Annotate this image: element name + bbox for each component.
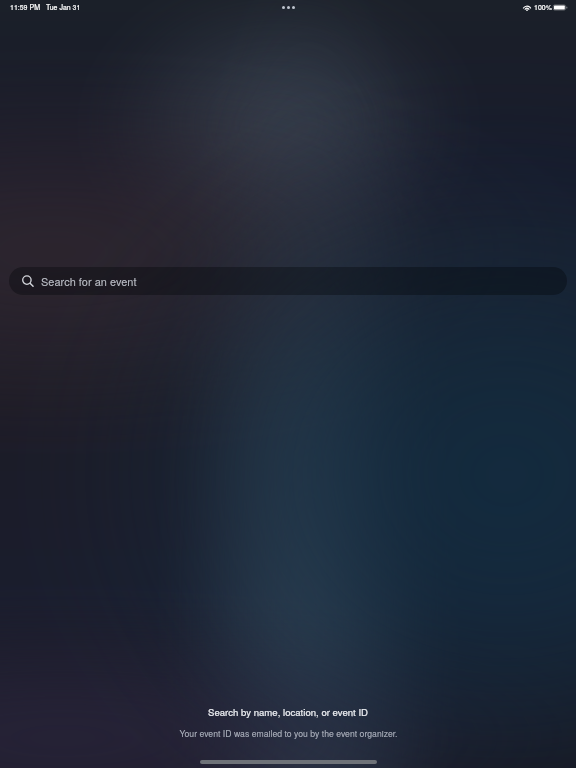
button[interactable]: Search bbox=[9, 267, 567, 295]
staticText: Your event ID was emailed to you by the … bbox=[179, 727, 398, 739]
staticText: 11:59 PM bbox=[10, 2, 40, 12]
other: Battery full bbox=[553, 4, 568, 11]
other: Search bbox=[22, 275, 34, 287]
staticText: Tue Jan 31 bbox=[46, 2, 81, 12]
staticText: Search by name, location, or event ID bbox=[208, 705, 368, 719]
other: Wi-Fi signal bbox=[523, 4, 531, 11]
staticText: 100% bbox=[534, 2, 552, 12]
staticText: Search for an event bbox=[41, 273, 137, 289]
